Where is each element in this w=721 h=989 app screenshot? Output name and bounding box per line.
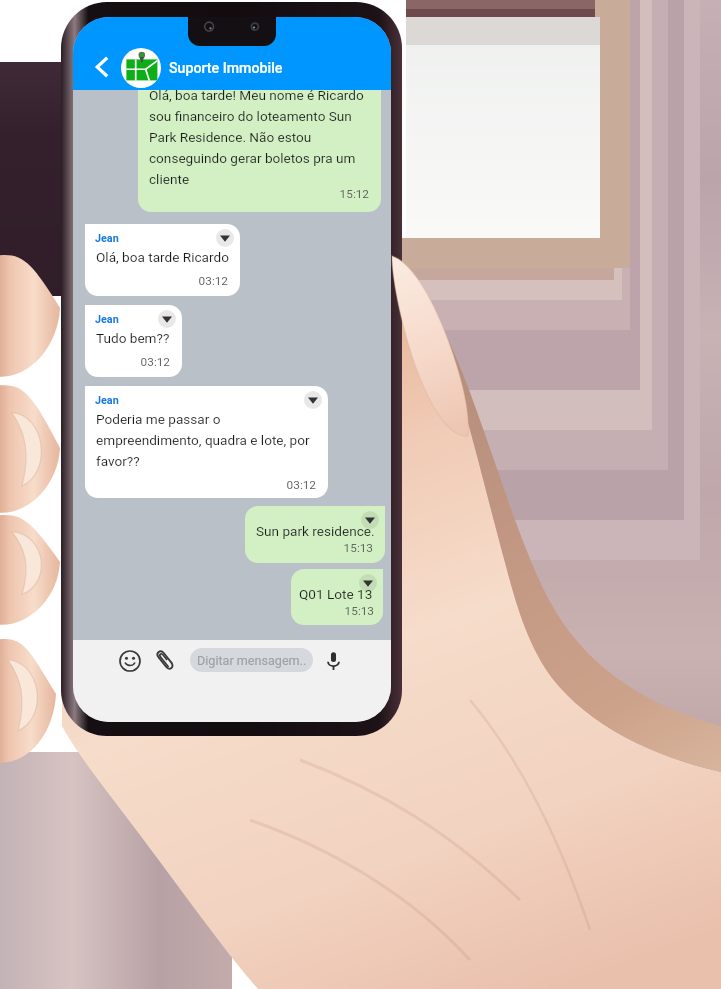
button[interactable]: Q01 Lote 13 <box>291 569 383 625</box>
staticText: Jean <box>95 394 119 407</box>
staticText: 03:12 <box>85 355 170 369</box>
button[interactable]: Olá, boa tarde! Meu nome é Ricardo sou f… <box>138 90 381 212</box>
button[interactable]: Sun park residence. <box>245 506 385 563</box>
button[interactable]: Jean <box>85 386 328 498</box>
staticText: Olá, boa tarde! Meu nome é Ricardo sou f… <box>149 90 372 187</box>
button[interactable]: Record voice message <box>319 647 347 675</box>
staticText: 15:13 <box>245 541 373 555</box>
staticText: 03:12 <box>85 274 228 288</box>
button[interactable]: Emoji <box>116 647 144 675</box>
staticText: Jean <box>95 232 119 245</box>
button[interactable]: Back <box>85 50 119 84</box>
button[interactable]: Jean <box>85 305 182 377</box>
staticText: Suporte Immobile <box>169 60 283 77</box>
button[interactable]: Attach file <box>151 646 179 674</box>
staticText: Jean <box>95 313 119 326</box>
staticText: 03:12 <box>85 478 316 492</box>
staticText: Digitar mensagem.. <box>197 653 307 668</box>
button[interactable]: Digitar mensagem.. <box>190 648 313 672</box>
staticText: Tudo bem?? <box>96 330 173 346</box>
staticText: Olá, boa tarde Ricardo <box>96 249 231 265</box>
staticText: Q01 Lote 13 <box>299 586 377 602</box>
staticText: 15:12 <box>138 187 369 201</box>
staticText: Sun park residence. <box>256 523 376 539</box>
button[interactable]: Jean <box>85 224 240 296</box>
staticText: 15:13 <box>291 604 374 618</box>
staticText: Poderia me passar o empreendimento, quad… <box>96 411 319 469</box>
